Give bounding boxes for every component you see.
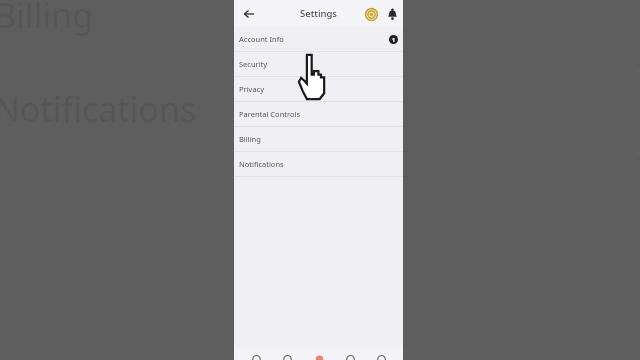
button[interactable]: Rewards: [362, 5, 380, 23]
button[interactable]: Library: [341, 348, 359, 360]
button[interactable]: Account Info: [234, 27, 403, 52]
button[interactable]: Profile: [310, 348, 328, 360]
button[interactable]: Back: [238, 3, 260, 25]
staticText: 1: [392, 36, 396, 43]
button[interactable]: Privacy: [234, 77, 403, 102]
button[interactable]: More: [372, 348, 390, 360]
button[interactable]: Search: [278, 348, 296, 360]
button[interactable]: Security: [234, 52, 403, 77]
staticText: Settings: [300, 7, 337, 20]
staticText: Notifications: [239, 159, 284, 169]
staticText: Account Info: [239, 34, 284, 44]
button[interactable]: Parental Controls: [234, 102, 403, 127]
button[interactable]: Notifications: [383, 5, 401, 23]
staticText: Parental Controls: [239, 109, 300, 119]
staticText: Billing: [239, 134, 261, 144]
button[interactable]: Notifications: [234, 152, 403, 177]
button[interactable]: Home: [247, 348, 265, 360]
button[interactable]: Billing: [234, 127, 403, 152]
staticText: Privacy: [239, 84, 265, 94]
staticText: Security: [239, 59, 268, 69]
